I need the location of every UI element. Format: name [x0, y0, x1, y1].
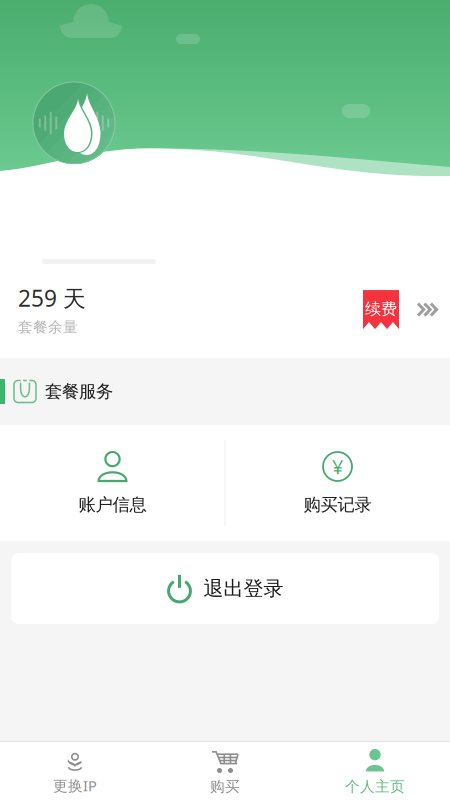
button[interactable]: 退出登录: [11, 553, 439, 624]
staticText: 购买: [210, 777, 240, 795]
staticText: 续费: [365, 299, 397, 319]
button[interactable]: 购买: [150, 742, 300, 800]
staticText: 个人主页: [345, 777, 405, 795]
staticText: 购买记录: [303, 494, 371, 515]
staticText: 退出登录: [203, 576, 283, 601]
button[interactable]: 个人主页: [300, 742, 450, 800]
button[interactable]: 账户信息: [0, 425, 225, 541]
staticText: 套餐余量: [18, 318, 78, 336]
button[interactable]: 续费: [363, 290, 439, 329]
button[interactable]: 更换IP: [0, 742, 150, 800]
staticText: 账户信息: [78, 494, 146, 515]
staticText: 更换IP: [53, 776, 97, 795]
staticText: ¥: [332, 453, 343, 480]
staticText: 套餐服务: [45, 381, 113, 402]
staticText: 259 天: [18, 283, 86, 313]
button[interactable]: ¥: [225, 425, 450, 541]
